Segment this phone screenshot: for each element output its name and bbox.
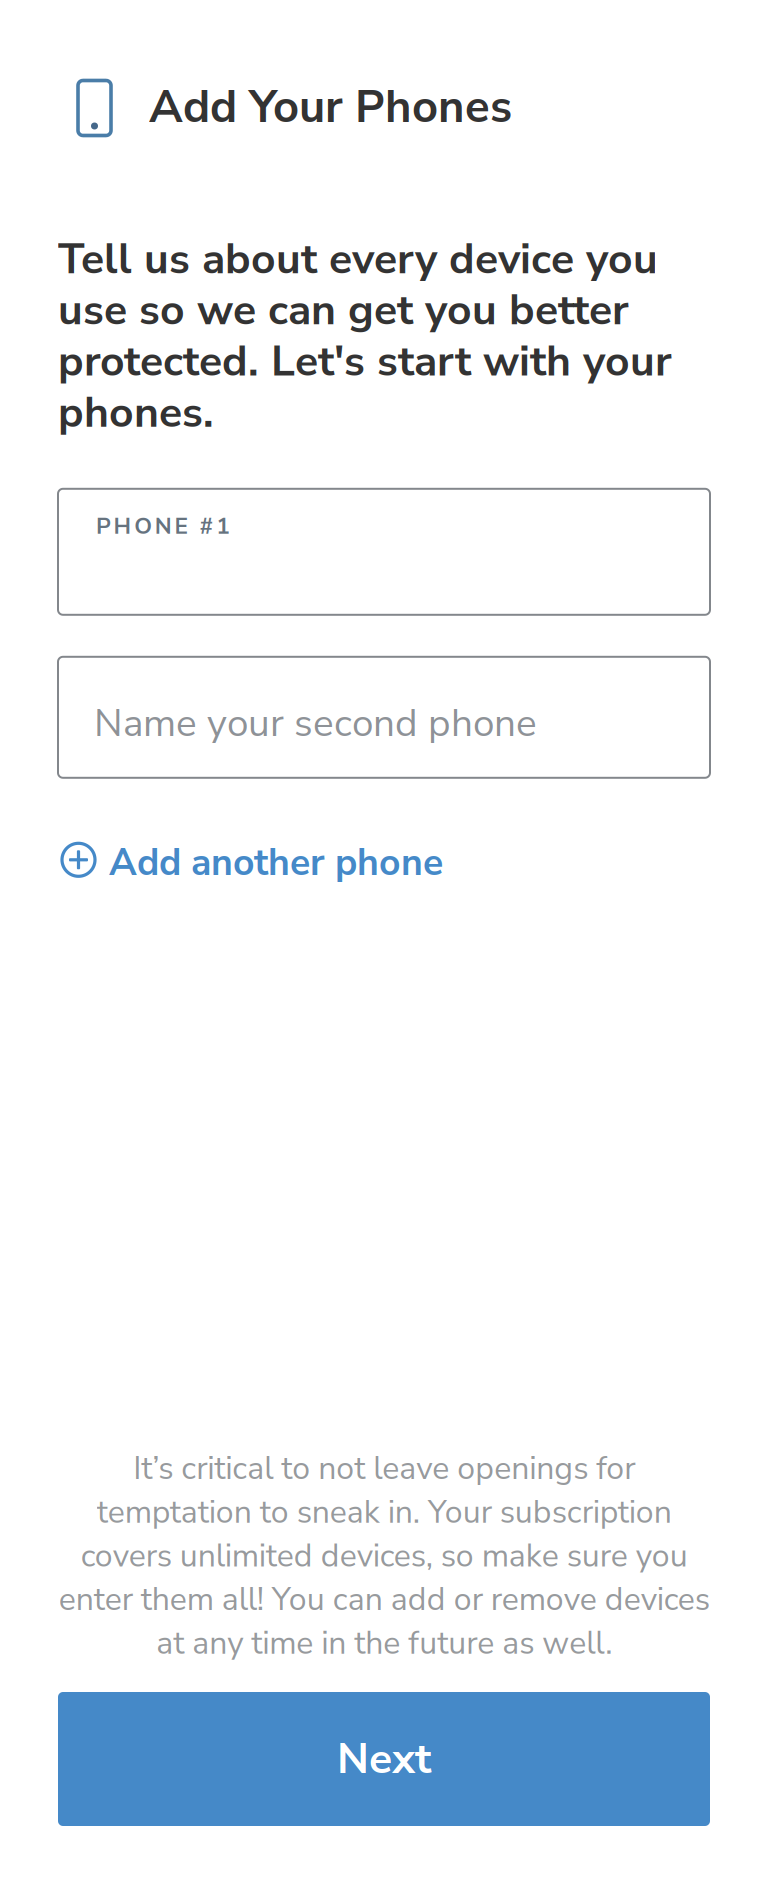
button[interactable]: Next (58, 1692, 710, 1826)
staticText: It’s critical to not leave openings for … (58, 1447, 709, 1665)
button[interactable]: PHONE #1 (58, 489, 710, 615)
button[interactable]: Add another phone (62, 838, 443, 882)
staticText: Name your second phone (94, 697, 537, 749)
staticText: Add another phone (109, 837, 443, 888)
staticText: Next (337, 1730, 431, 1788)
staticText: Add Your Phones (149, 76, 512, 138)
button[interactable]: Name your second phone (58, 657, 710, 778)
staticText: PHONE #1 (96, 511, 230, 542)
staticText: Tell us about every device you use so we… (58, 230, 672, 442)
